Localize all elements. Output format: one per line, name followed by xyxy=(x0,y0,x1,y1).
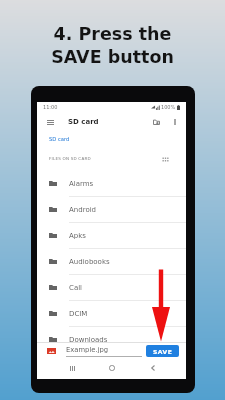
staticText: SD card xyxy=(49,136,70,142)
button[interactable]: SAVE xyxy=(146,345,179,357)
button[interactable]: Apks xyxy=(37,223,186,249)
button[interactable]: Audiobooks xyxy=(37,249,186,275)
staticText: Audiobooks xyxy=(69,258,110,266)
button[interactable]: Alarms xyxy=(37,171,186,197)
staticText: 100% xyxy=(161,104,176,110)
staticText: 4. Press the SAVE button xyxy=(51,24,174,67)
button[interactable]: Recents xyxy=(65,361,79,375)
staticText: Alarms xyxy=(69,180,94,188)
button[interactable]: Menu xyxy=(43,115,57,129)
button[interactable]: Grid view xyxy=(159,153,171,165)
staticText: SAVE xyxy=(153,348,173,355)
button[interactable]: Back xyxy=(146,361,160,375)
staticText: SD card xyxy=(68,118,99,126)
button[interactable]: SD card xyxy=(49,136,70,142)
button[interactable]: SD card xyxy=(68,118,99,126)
button[interactable]: Call xyxy=(37,275,186,301)
staticText: DCIM xyxy=(69,310,88,318)
staticText: Call xyxy=(69,284,83,292)
button[interactable]: More options xyxy=(168,115,182,129)
staticText: 11:00 xyxy=(43,104,58,110)
button[interactable]: Home xyxy=(105,361,119,375)
staticText: Downloads xyxy=(69,336,108,344)
button[interactable]: Downloads xyxy=(37,327,186,353)
staticText: Apks xyxy=(69,232,86,240)
staticText: Android xyxy=(69,206,97,214)
staticText: FILES ON SD CARD xyxy=(49,156,91,161)
button[interactable]: Android xyxy=(37,197,186,223)
staticText: Example.jpg xyxy=(66,346,109,354)
button[interactable]: New folder xyxy=(149,115,163,129)
button[interactable]: DCIM xyxy=(37,301,186,327)
